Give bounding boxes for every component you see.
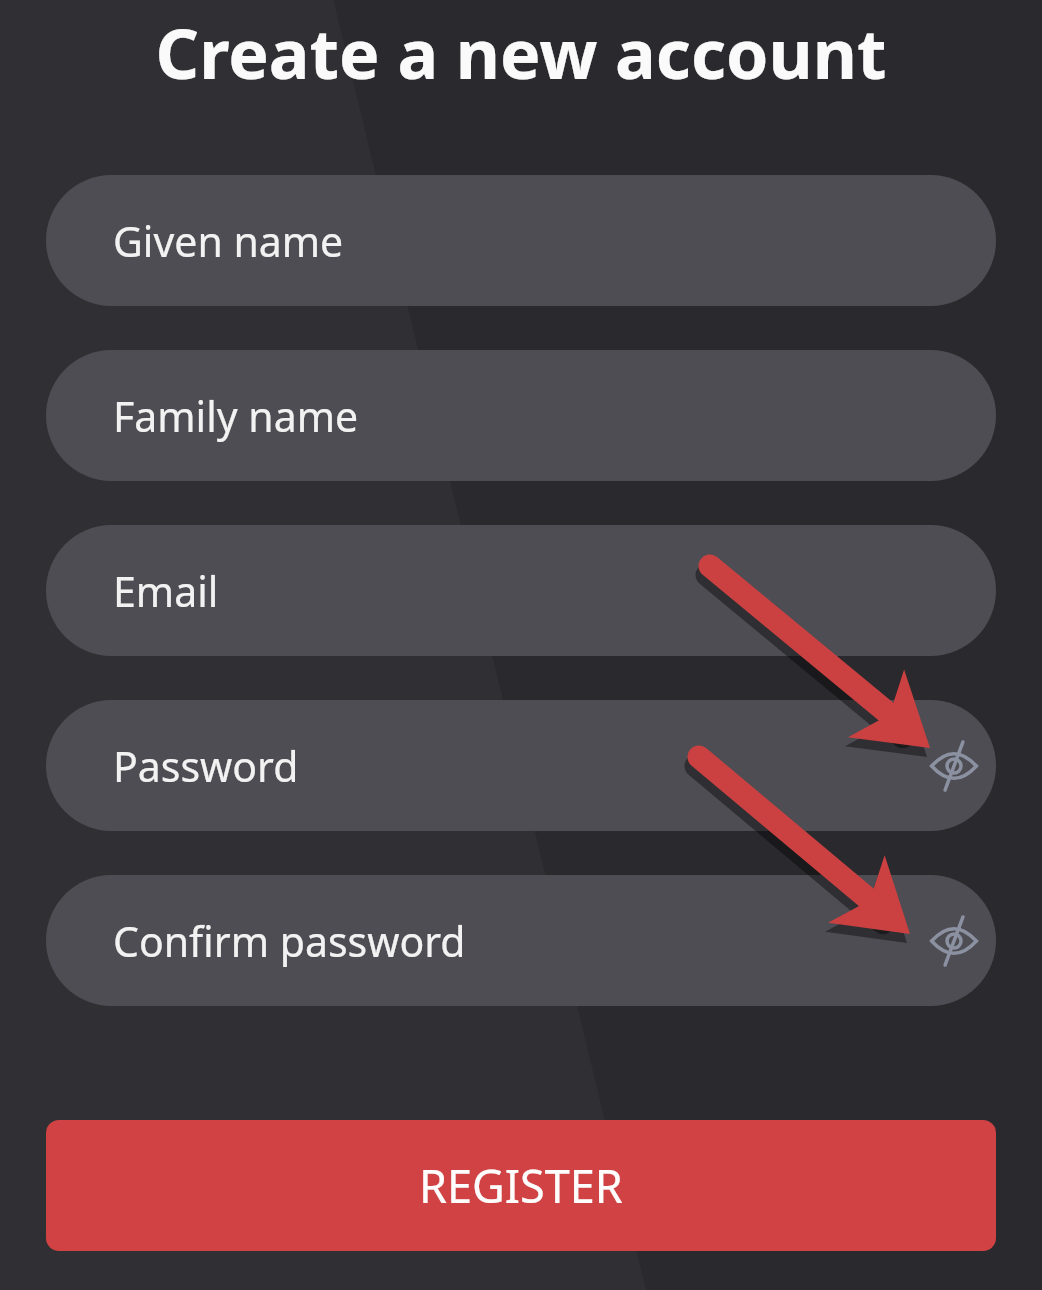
button[interactable]: Email bbox=[46, 525, 996, 656]
staticText: Family name bbox=[113, 388, 996, 444]
staticText: REGISTER bbox=[419, 1155, 623, 1216]
button[interactable]: REGISTER bbox=[46, 1120, 996, 1251]
staticText: Given name bbox=[113, 213, 996, 269]
staticText: Password bbox=[113, 738, 918, 794]
staticText: Confirm password bbox=[113, 913, 918, 969]
button[interactable]: Show Password bbox=[918, 730, 990, 802]
button[interactable]: Password bbox=[46, 700, 996, 831]
staticText: Create a new account bbox=[0, 6, 1042, 99]
button[interactable]: Confirm password bbox=[46, 875, 996, 1006]
button[interactable]: Family name bbox=[46, 350, 996, 481]
button[interactable]: Show Confirm password bbox=[918, 905, 990, 977]
button[interactable]: Given name bbox=[46, 175, 996, 306]
staticText: Email bbox=[113, 563, 996, 619]
